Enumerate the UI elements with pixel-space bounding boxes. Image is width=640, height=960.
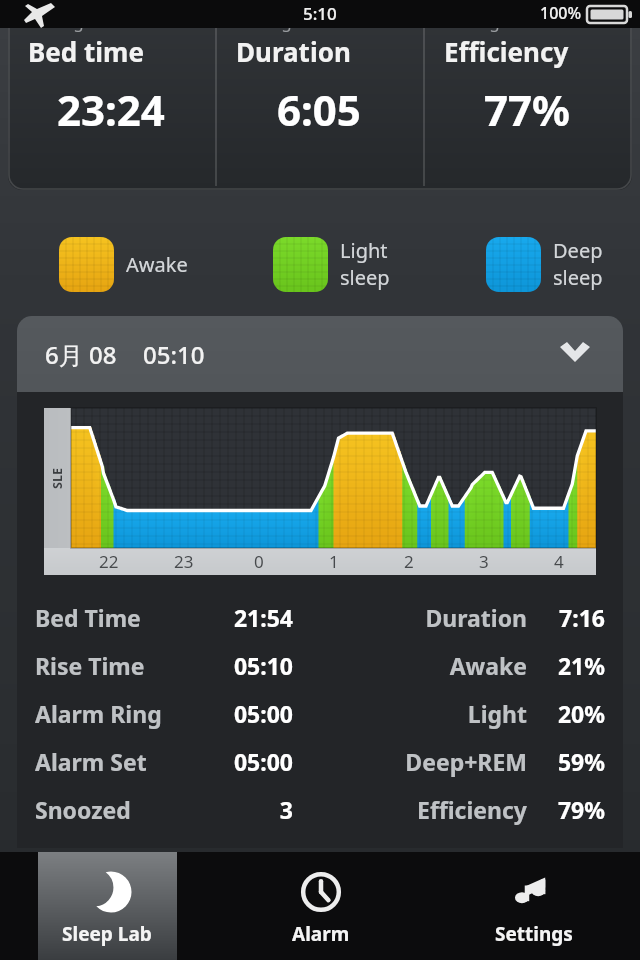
staticText: Duration <box>236 34 351 69</box>
button[interactable]: Settings <box>427 852 640 960</box>
staticText: Bed time <box>28 34 144 69</box>
staticText: Duration <box>293 602 527 633</box>
staticText: 59% <box>541 746 605 777</box>
button[interactable]: Snoozed <box>35 785 605 833</box>
button[interactable]: Alarm <box>214 852 427 960</box>
staticText: 3 <box>479 550 489 573</box>
staticText: Average <box>28 10 94 33</box>
staticText: Light <box>340 237 388 264</box>
staticText: 6:05 <box>277 81 361 138</box>
staticText: 23:24 <box>57 81 165 138</box>
staticText: Awake <box>293 650 527 681</box>
staticText: 77% <box>484 81 570 138</box>
staticText: Rise Time <box>35 650 185 681</box>
staticText: 79% <box>541 794 605 825</box>
staticText: 21% <box>541 650 605 681</box>
staticText: 6月 08 <box>45 338 117 371</box>
staticText: Deep+REM <box>293 746 527 777</box>
staticText: 05:10 <box>185 650 293 681</box>
staticText: 100% <box>540 2 582 24</box>
button[interactable]: Average <box>8 0 216 190</box>
staticText: 7:16 <box>541 602 605 633</box>
button[interactable]: Alarm Ring <box>35 689 605 737</box>
button[interactable]: Average <box>424 0 632 190</box>
staticText: 22 <box>99 550 119 573</box>
button[interactable]: Awake <box>0 228 214 300</box>
staticText: sleep <box>340 264 390 291</box>
staticText: 2 <box>404 550 414 573</box>
button[interactable]: Sleep Lab <box>0 852 214 960</box>
staticText: 4 <box>554 550 564 573</box>
staticText: 05:00 <box>185 698 293 729</box>
staticText: Light <box>293 698 527 729</box>
staticText: 3 <box>185 794 293 825</box>
staticText: Sleep Lab <box>62 921 152 947</box>
button[interactable]: Alarm Set <box>35 737 605 785</box>
button[interactable]: 6月 08 <box>17 316 623 392</box>
button[interactable]: Average <box>216 0 424 190</box>
staticText: sleep <box>553 264 603 291</box>
staticText: Bed Time <box>35 602 185 633</box>
staticText: 0 <box>254 550 264 573</box>
staticText: Alarm Ring <box>35 698 185 729</box>
staticText: 05:10 <box>143 338 205 371</box>
staticText: Snoozed <box>35 794 185 825</box>
button[interactable]: Light <box>214 228 427 300</box>
staticText: Settings <box>495 921 573 947</box>
button[interactable]: Bed Time <box>35 593 605 641</box>
staticText: Average <box>444 10 510 33</box>
staticText: 23 <box>174 550 194 573</box>
staticText: 05:00 <box>185 746 293 777</box>
button[interactable]: Rise Time <box>35 641 605 689</box>
staticText: Alarm <box>292 921 350 947</box>
staticText: Awake <box>126 251 188 278</box>
staticText: Average <box>236 10 302 33</box>
staticText: Efficiency <box>293 794 527 825</box>
staticText: Efficiency <box>444 34 569 69</box>
other: Collapse session <box>559 338 591 370</box>
staticText: SLEEP DEPTH <box>49 465 66 492</box>
staticText: 21:54 <box>185 602 293 633</box>
button[interactable]: Deep <box>427 228 640 300</box>
staticText: 5:10 <box>303 2 337 25</box>
staticText: 1 <box>329 550 339 573</box>
staticText: Deep <box>553 237 603 264</box>
staticText: 20% <box>541 698 605 729</box>
staticText: Alarm Set <box>35 746 185 777</box>
